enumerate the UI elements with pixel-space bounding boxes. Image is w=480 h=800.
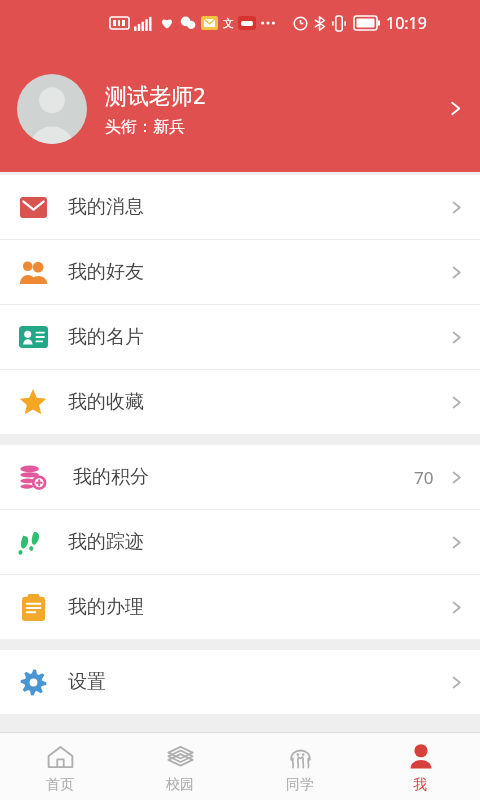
- staticText: 首页: [46, 776, 74, 794]
- button[interactable]: 我: [360, 733, 480, 800]
- staticText: 文: [223, 16, 234, 30]
- staticText: 校园: [166, 776, 194, 794]
- staticText: 设置: [68, 670, 106, 694]
- staticText: 我的积分: [73, 465, 149, 489]
- button[interactable]: 首页: [0, 733, 120, 800]
- staticText: 我的办理: [68, 595, 144, 619]
- button[interactable]: 设置: [0, 650, 480, 714]
- staticText: 我的消息: [68, 195, 144, 219]
- button[interactable]: 我的办理: [0, 575, 480, 639]
- button[interactable]: 我的好友: [0, 240, 480, 305]
- staticText: 我: [413, 776, 427, 794]
- button[interactable]: 校园: [120, 733, 240, 800]
- staticText: 同学: [286, 776, 314, 794]
- button[interactable]: 我的踪迹: [0, 510, 480, 575]
- button[interactable]: 测试老师2: [0, 45, 480, 172]
- staticText: 我的踪迹: [68, 530, 144, 554]
- button[interactable]: 同学: [240, 733, 360, 800]
- staticText: 测试老师2: [105, 80, 206, 110]
- staticText: 70: [414, 466, 434, 489]
- staticText: 我的名片: [68, 325, 144, 349]
- button[interactable]: 我的收藏: [0, 370, 480, 434]
- staticText: 我的好友: [68, 260, 144, 284]
- button[interactable]: 我的名片: [0, 305, 480, 370]
- staticText: 头衔：新兵: [105, 117, 185, 137]
- button[interactable]: 我的消息: [0, 175, 480, 240]
- button[interactable]: 我的积分: [0, 445, 480, 510]
- staticText: 10:19: [386, 12, 427, 34]
- staticText: 我的收藏: [68, 390, 144, 414]
